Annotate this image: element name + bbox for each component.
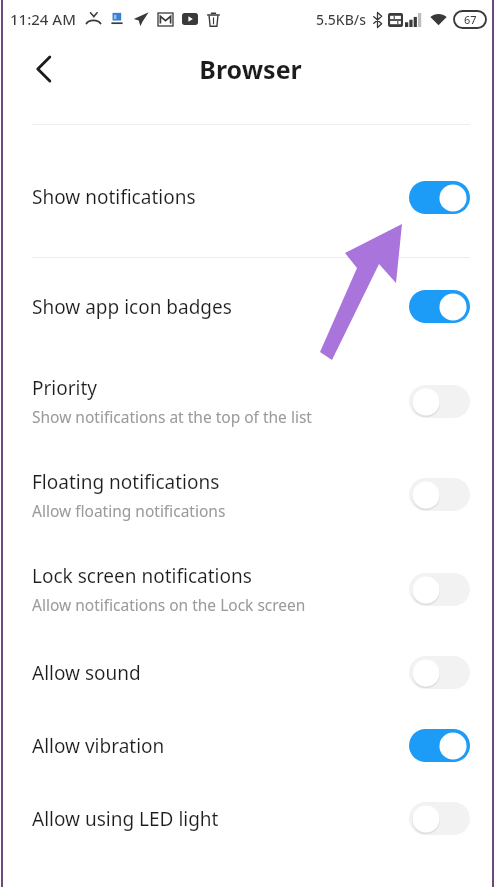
staticText: Allow using LED light <box>32 806 219 832</box>
button[interactable]: Lock screen notifications <box>409 573 470 606</box>
staticText: Priority <box>32 375 98 401</box>
button[interactable]: Show app icon badges <box>0 258 500 355</box>
button[interactable]: Back <box>20 46 66 92</box>
staticText: 11:24 AM <box>10 9 76 29</box>
staticText: Show app icon badges <box>32 294 232 320</box>
button[interactable]: Allow vibration <box>0 709 500 782</box>
staticText: Browser <box>199 52 302 86</box>
staticText: Allow floating notifications <box>32 500 226 521</box>
staticText: 67 <box>464 12 477 27</box>
staticText: Allow notifications on the Lock screen <box>32 594 306 615</box>
staticText: Allow sound <box>32 660 141 686</box>
staticText: Floating notifications <box>32 469 220 495</box>
staticText: Show notifications <box>32 184 196 210</box>
button[interactable]: Priority <box>409 385 470 418</box>
button[interactable]: Allow vibration <box>409 729 470 762</box>
button[interactable]: Show app icon badges <box>409 290 470 323</box>
button[interactable]: Allow sound <box>0 636 500 709</box>
button[interactable]: Show notifications <box>409 181 470 214</box>
staticText: Lock screen notifications <box>32 563 252 589</box>
staticText: Show notifications at the top of the lis… <box>32 406 312 427</box>
button[interactable]: Allow using LED light <box>0 782 500 855</box>
staticText: Allow vibration <box>32 733 165 759</box>
button[interactable]: Allow sound <box>409 656 470 689</box>
button[interactable]: Allow using LED light <box>409 802 470 835</box>
button[interactable]: Floating notifications <box>409 478 470 511</box>
button[interactable]: Lock screen notifications <box>0 542 500 636</box>
staticText: 5.5KB/s <box>316 10 367 29</box>
button[interactable]: Show notifications <box>0 137 500 257</box>
button[interactable]: Floating notifications <box>0 447 500 542</box>
button[interactable]: Priority <box>0 355 500 447</box>
